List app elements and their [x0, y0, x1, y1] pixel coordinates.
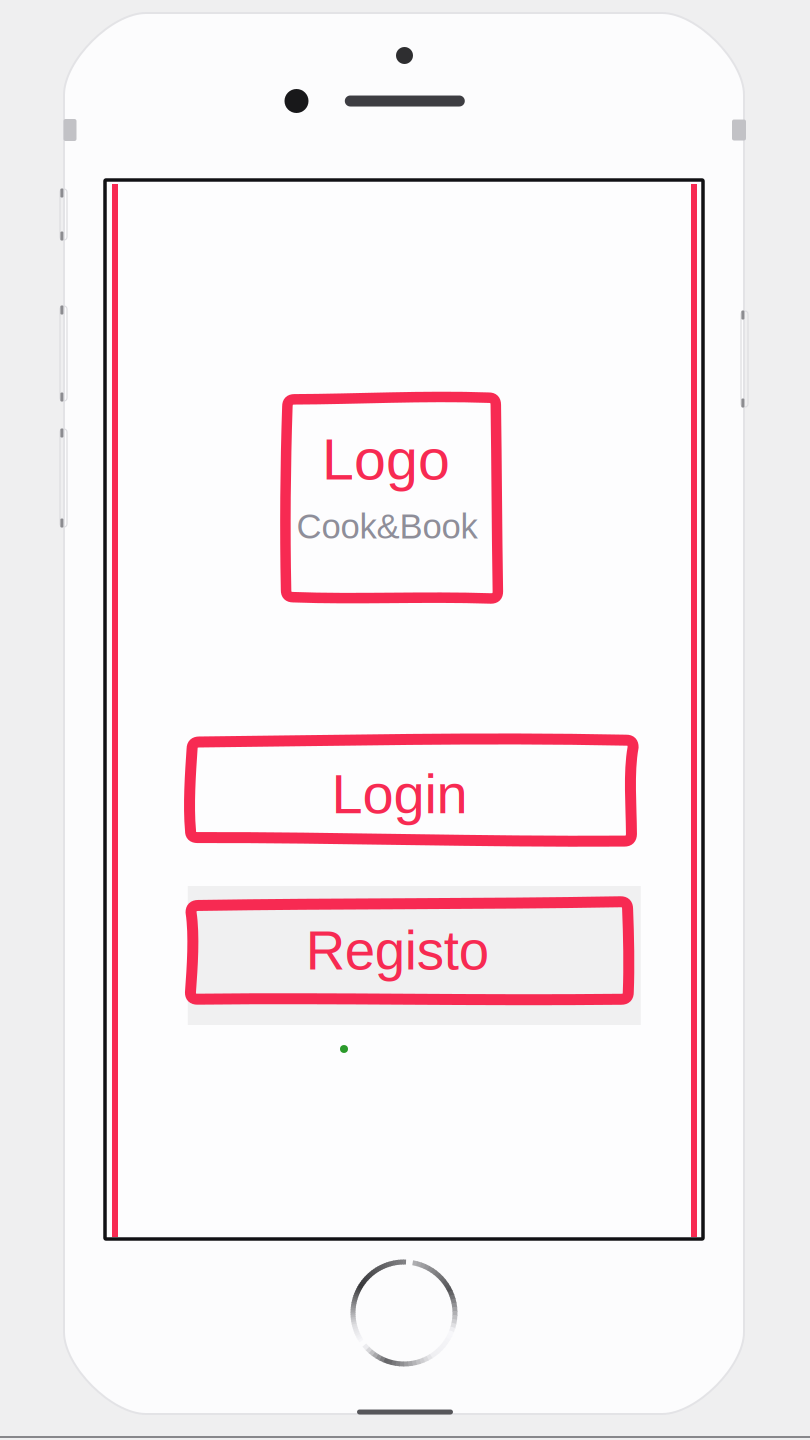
- staticText: Logo: [322, 427, 450, 492]
- staticText: Registo: [306, 920, 489, 981]
- staticText: Login: [332, 762, 468, 825]
- button[interactable]: Logo: [267, 376, 515, 616]
- staticText: Cook&Book: [296, 507, 477, 546]
- button[interactable]: Login: [185, 732, 637, 852]
- button[interactable]: Registo: [175, 871, 645, 1031]
